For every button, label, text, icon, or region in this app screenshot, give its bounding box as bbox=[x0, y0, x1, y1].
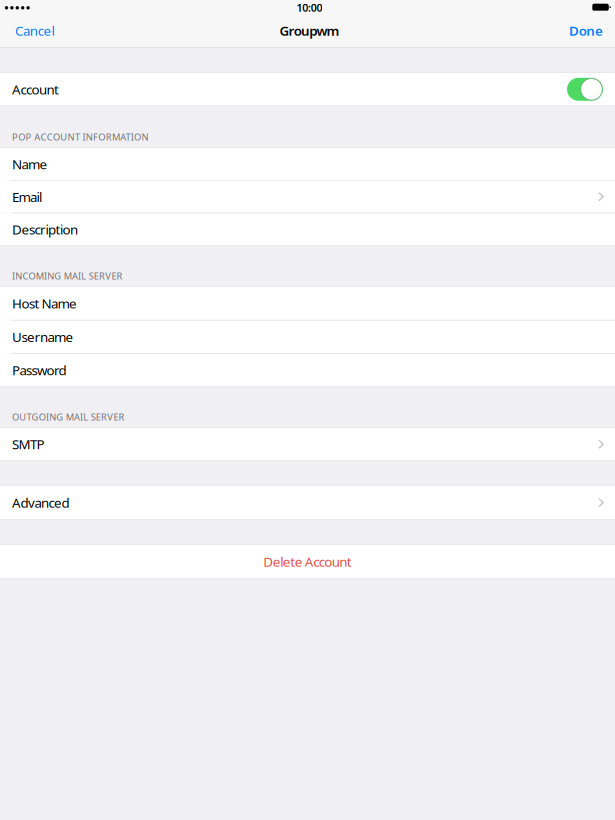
staticText: INCOMING MAIL SERVER bbox=[12, 270, 123, 282]
staticText: Cancel bbox=[15, 22, 54, 39]
staticText: Host Name bbox=[12, 295, 77, 312]
staticText: Name bbox=[12, 155, 47, 173]
staticText: Groupwm bbox=[279, 22, 340, 39]
button[interactable]: Name bbox=[0, 148, 615, 180]
button[interactable]: Description bbox=[0, 213, 615, 245]
staticText: 10:00 bbox=[297, 0, 322, 15]
staticText: Advanced bbox=[12, 494, 69, 511]
staticText: Username bbox=[12, 328, 73, 346]
button[interactable]: Host Name bbox=[0, 287, 615, 320]
staticText: Done bbox=[569, 22, 603, 39]
staticText: SMTP bbox=[12, 435, 44, 453]
button[interactable]: Username bbox=[0, 321, 615, 353]
staticText: OUTGOING MAIL SERVER bbox=[12, 411, 125, 423]
staticText: POP ACCOUNT INFORMATION bbox=[12, 131, 148, 143]
button[interactable]: SMTP bbox=[0, 428, 615, 460]
button[interactable]: Password bbox=[0, 354, 615, 386]
staticText: Account bbox=[12, 80, 59, 98]
button[interactable]: Advanced bbox=[0, 486, 615, 519]
staticText: Description bbox=[12, 221, 78, 238]
button[interactable]: Delete Account bbox=[0, 545, 615, 578]
staticText: Password bbox=[12, 361, 66, 379]
staticText: Delete Account bbox=[263, 553, 352, 570]
button[interactable]: Cancel bbox=[15, 17, 60, 44]
button[interactable]: Email bbox=[0, 181, 615, 213]
staticText: Email bbox=[12, 188, 42, 206]
button[interactable]: Account, on bbox=[567, 78, 603, 101]
button[interactable]: Done bbox=[563, 17, 603, 44]
